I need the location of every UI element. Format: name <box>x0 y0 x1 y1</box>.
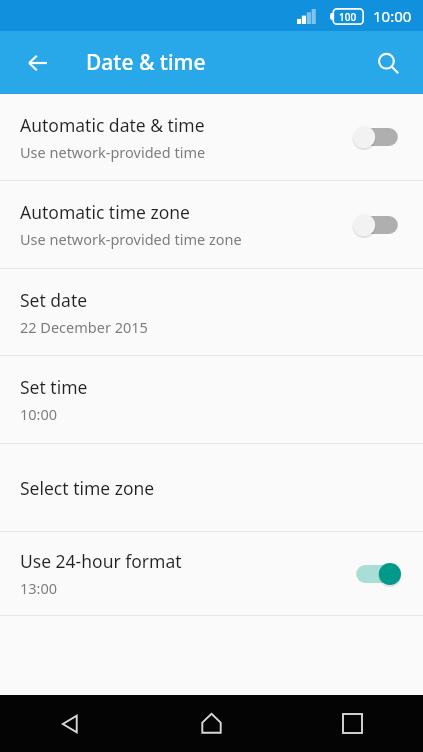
button[interactable] <box>351 122 403 152</box>
button[interactable]: Home <box>141 695 282 752</box>
button[interactable]: Automatic time zone <box>0 181 423 268</box>
staticText: Set date <box>20 288 88 312</box>
button[interactable]: Search <box>362 37 414 89</box>
button[interactable]: Automatic date & time <box>0 94 423 180</box>
staticText: 100 <box>339 10 357 24</box>
staticText: Use 24-hour format <box>20 549 182 573</box>
staticText: Use network-provided time <box>20 142 206 162</box>
button[interactable]: Select time zone <box>0 444 423 531</box>
button[interactable] <box>351 210 403 240</box>
staticText: 13:00 <box>20 578 58 598</box>
button[interactable]: Recent apps <box>282 695 423 752</box>
staticText: Select time zone <box>20 476 155 500</box>
staticText: Date & time <box>86 48 206 77</box>
button[interactable]: Use 24-hour format <box>0 532 423 615</box>
button[interactable]: Back <box>10 35 66 91</box>
button[interactable]: Set date <box>0 269 423 355</box>
staticText: 10:00 <box>20 404 58 424</box>
button[interactable]: Back <box>0 695 141 752</box>
staticText: Use network-provided time zone <box>20 229 242 249</box>
button[interactable] <box>351 559 403 589</box>
staticText: Set time <box>20 375 88 399</box>
staticText: Automatic time zone <box>20 200 190 224</box>
staticText: Automatic date & time <box>20 113 205 137</box>
staticText: 10:00 <box>373 6 412 26</box>
button[interactable]: Set time <box>0 356 423 443</box>
staticText: 22 December 2015 <box>20 317 148 337</box>
